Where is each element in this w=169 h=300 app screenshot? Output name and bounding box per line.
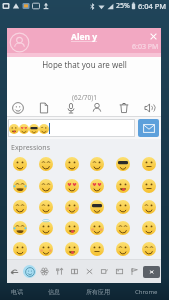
button[interactable]: Emoji 13: [9, 197, 30, 217]
button[interactable]: Smileys category: [23, 265, 36, 278]
button[interactable]: Emoji 2: [35, 154, 56, 174]
button[interactable]: Backspace: [143, 266, 160, 278]
button[interactable]: Back: [8, 265, 21, 278]
button[interactable]: Emoji 25: [9, 239, 30, 259]
button[interactable]: Delete: [117, 101, 131, 115]
button[interactable]: Emoji 16: [86, 197, 107, 217]
button[interactable]: Emoji 15: [61, 197, 82, 217]
button[interactable]: Contact avatar: [9, 32, 30, 53]
button[interactable]: Emoji 14: [35, 197, 56, 217]
button[interactable]: Emoji 9: [61, 176, 82, 196]
button[interactable]: 所有应用: [83, 286, 113, 298]
button[interactable]: Close: [147, 30, 159, 42]
staticText: Chrome: [135, 288, 158, 296]
button[interactable]: Food category: [53, 265, 66, 278]
button[interactable]: Emoji 26: [35, 239, 56, 259]
button[interactable]: Emoji 23: [112, 218, 133, 238]
button[interactable]: Chrome: [132, 286, 161, 298]
button[interactable]: Travel category: [83, 265, 96, 278]
button[interactable]: Emoji 27: [61, 239, 82, 259]
button[interactable]: Emoji 4: [86, 154, 107, 174]
button[interactable]: Emoji 6: [138, 154, 159, 174]
button[interactable]: Emoji 1: [9, 154, 30, 174]
button[interactable]: Emoji 28: [86, 239, 107, 259]
button[interactable]: Emoji 24: [138, 218, 159, 238]
button[interactable]: Emoji 29: [112, 239, 133, 259]
staticText: (62/70)1: [72, 93, 97, 102]
button[interactable]: Emoji 19: [9, 218, 30, 238]
button[interactable]: Emoji 5: [112, 154, 133, 174]
button[interactable]: Emoji 8: [35, 176, 56, 196]
button[interactable]: Emoji 30: [138, 239, 159, 259]
staticText: Alen y: [71, 31, 98, 43]
button[interactable]: Emoji: [11, 101, 25, 115]
staticText: 电话: [11, 288, 23, 296]
button[interactable]: Emoji 17: [112, 197, 133, 217]
button[interactable]: Emoji 22: [86, 218, 107, 238]
button[interactable]: Voice message: [64, 101, 78, 115]
staticText: 25%: [116, 1, 130, 11]
staticText: 6:04 PM: [138, 1, 167, 11]
button[interactable]: Contact: [90, 101, 104, 115]
staticText: Hope that you are well: [42, 59, 127, 70]
button[interactable]: [8, 119, 135, 137]
button[interactable]: Activity category: [68, 265, 81, 278]
button[interactable]: 信息: [45, 286, 63, 298]
button[interactable]: Emoji 20: [35, 218, 56, 238]
button[interactable]: Flags category: [128, 265, 141, 278]
button[interactable]: Nature category: [38, 265, 51, 278]
button[interactable]: Sound: [143, 101, 157, 115]
staticText: 所有应用: [86, 288, 110, 296]
staticText: Expressions: [11, 143, 51, 153]
staticText: 信息: [48, 288, 60, 296]
button[interactable]: Symbols category: [113, 265, 126, 278]
button[interactable]: Send: [138, 119, 159, 137]
staticText: 6:03 PM: [132, 42, 159, 52]
button[interactable]: Emoji 10: [86, 176, 107, 196]
button[interactable]: Objects category: [98, 265, 111, 278]
button[interactable]: Emoji 21: [61, 218, 82, 238]
button[interactable]: Emoji 12: [138, 176, 159, 196]
button[interactable]: Emoji 18: [138, 197, 159, 217]
button[interactable]: 电话: [8, 286, 26, 298]
button[interactable]: Attach file: [37, 101, 51, 115]
button[interactable]: Emoji 11: [112, 176, 133, 196]
button[interactable]: Emoji 7: [9, 176, 30, 196]
button[interactable]: Emoji 3: [61, 154, 82, 174]
